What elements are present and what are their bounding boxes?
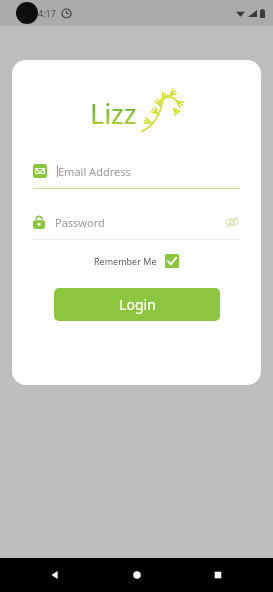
button[interactable]: Password xyxy=(33,209,240,235)
other: Email xyxy=(33,164,47,178)
staticText: Lizz xyxy=(90,95,137,132)
button[interactable]: Email xyxy=(33,158,240,184)
staticText: Login xyxy=(119,295,156,314)
button[interactable]: Recents xyxy=(207,564,229,586)
other: Password xyxy=(33,215,45,229)
staticText: 4:17 xyxy=(38,7,56,19)
button[interactable]: Back xyxy=(44,564,66,586)
button[interactable]: Home xyxy=(126,564,148,586)
button[interactable]: Remember Me xyxy=(94,254,179,268)
staticText: Remember Me xyxy=(94,255,157,267)
button[interactable]: Show password xyxy=(224,214,240,230)
staticText: Password xyxy=(55,215,105,230)
staticText: Email Address xyxy=(58,164,131,179)
button[interactable]: Login xyxy=(54,288,220,321)
